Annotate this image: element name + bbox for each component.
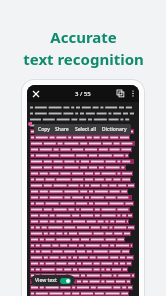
button[interactable]: Copy xyxy=(114,87,127,100)
button[interactable]: Share xyxy=(54,124,70,135)
button[interactable]: View text xyxy=(31,275,75,286)
staticText: Select all xyxy=(75,126,97,133)
button[interactable]: Copy xyxy=(37,124,51,135)
staticText: Share xyxy=(55,126,69,133)
staticText: Accurate xyxy=(50,27,117,47)
staticText: 3 / 55 xyxy=(75,90,91,98)
staticText: Copy xyxy=(38,126,50,133)
button[interactable]: More options xyxy=(127,88,138,99)
staticText: text recognition xyxy=(23,49,144,69)
staticText: View text xyxy=(35,277,57,284)
button[interactable]: Dictionary xyxy=(101,124,128,135)
button[interactable]: Select all xyxy=(74,124,98,135)
staticText: Dictionary xyxy=(102,126,127,133)
button[interactable]: Close xyxy=(29,87,42,100)
